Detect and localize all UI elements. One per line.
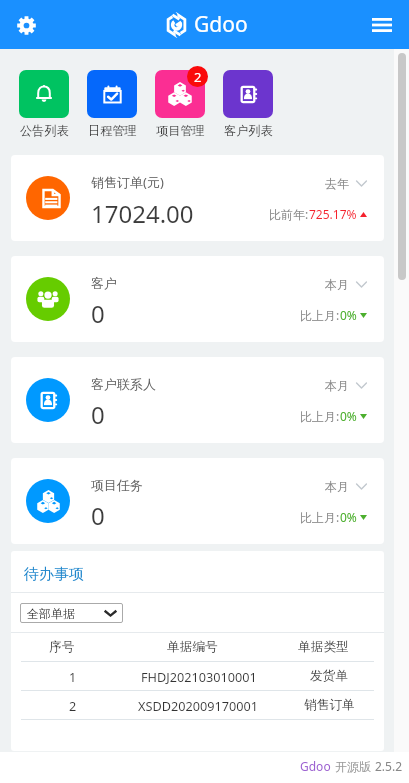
button[interactable]: 日程管理 bbox=[87, 70, 137, 138]
staticText: 0 bbox=[91, 499, 105, 532]
button[interactable]: 1 bbox=[11, 662, 384, 690]
staticText: 比上月: bbox=[300, 408, 340, 424]
staticText: 单据类型 bbox=[298, 639, 349, 655]
staticText: 序号 bbox=[49, 639, 75, 655]
staticText: 客户列表 bbox=[224, 123, 273, 138]
staticText: 比上月: bbox=[300, 509, 340, 525]
staticText: 0 bbox=[91, 398, 105, 431]
staticText: Gdoo bbox=[194, 10, 248, 39]
staticText: Gdoo bbox=[300, 758, 331, 774]
staticText: 比上月: bbox=[300, 307, 340, 323]
staticText: 客户联系人 bbox=[91, 376, 156, 392]
button[interactable]: 2 bbox=[11, 691, 384, 719]
staticText: 0% bbox=[340, 509, 357, 525]
staticText: 销售订单(元) bbox=[91, 173, 164, 191]
staticText: 客户 bbox=[91, 275, 117, 291]
staticText: 本月 bbox=[325, 277, 349, 292]
staticText: 日程管理 bbox=[88, 123, 137, 138]
staticText: 0% bbox=[340, 307, 357, 323]
staticText: 0 bbox=[91, 297, 105, 330]
staticText: 2 bbox=[69, 697, 77, 714]
button[interactable]: 销售订单(元) bbox=[11, 155, 384, 241]
staticText: FHDJ202103010001 bbox=[141, 668, 257, 685]
staticText: 单据编号 bbox=[167, 639, 218, 655]
staticText: 2 bbox=[194, 68, 202, 86]
button[interactable]: 2 bbox=[155, 70, 205, 138]
staticText: XSDD202009170001 bbox=[138, 697, 259, 714]
staticText: 本月 bbox=[325, 479, 349, 494]
staticText: 公告列表 bbox=[20, 123, 69, 138]
staticText: 开源版 bbox=[335, 759, 371, 774]
button[interactable]: 客户 bbox=[11, 256, 384, 342]
staticText: 去年 bbox=[325, 176, 349, 191]
staticText: 1 bbox=[69, 668, 77, 685]
staticText: 本月 bbox=[325, 378, 349, 393]
staticText: 全部单据 bbox=[27, 606, 75, 621]
button[interactable]: Settings bbox=[13, 12, 39, 38]
staticText: 发货单 bbox=[310, 668, 349, 684]
staticText: 17024.00 bbox=[91, 197, 194, 230]
staticText: 725.17% bbox=[309, 206, 357, 222]
button[interactable]: 项目任务 bbox=[11, 458, 384, 544]
button[interactable]: 全部单据 bbox=[20, 603, 123, 623]
staticText: 销售订单 bbox=[304, 697, 355, 713]
staticText: 比前年: bbox=[269, 206, 309, 222]
staticText: 0% bbox=[340, 408, 357, 424]
staticText: 项目任务 bbox=[91, 477, 143, 493]
staticText: 2.5.2 bbox=[375, 758, 403, 774]
staticText: 项目管理 bbox=[156, 123, 205, 138]
button[interactable]: 客户联系人 bbox=[11, 357, 384, 443]
button[interactable]: 公告列表 bbox=[19, 70, 69, 138]
staticText: 待办事项 bbox=[24, 565, 84, 584]
button[interactable]: Menu bbox=[369, 12, 395, 38]
button[interactable]: 客户列表 bbox=[223, 70, 273, 138]
button[interactable]: 序号 bbox=[11, 633, 384, 661]
